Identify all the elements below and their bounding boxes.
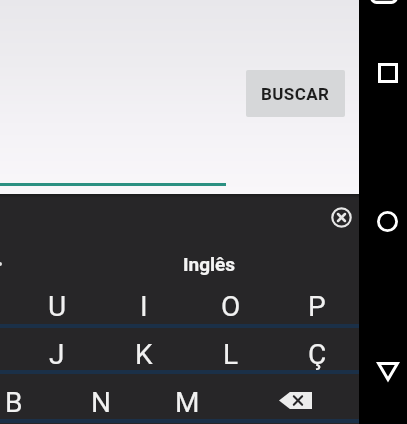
button[interactable]: Backspace — [273, 378, 317, 422]
staticText: K — [135, 338, 153, 371]
staticText: BUSCAR — [261, 84, 330, 104]
staticText: Ç — [308, 338, 327, 371]
button[interactable]: M — [144, 379, 230, 424]
staticText: N — [91, 386, 111, 419]
button[interactable]: L — [188, 331, 274, 378]
button[interactable]: BUSCAR — [246, 70, 345, 117]
button[interactable]: P — [274, 283, 360, 330]
button[interactable]: Inglês — [159, 249, 259, 279]
staticText: Inglês — [183, 253, 236, 275]
button[interactable]: J — [14, 331, 100, 378]
button[interactable]: U — [14, 283, 100, 330]
staticText: J — [49, 338, 65, 371]
button[interactable]: O — [188, 283, 274, 330]
button[interactable]: Recent apps — [378, 63, 398, 83]
button[interactable]: Hide keyboard — [370, 0, 398, 4]
staticText: I — [140, 290, 148, 323]
button[interactable]: N — [58, 379, 144, 424]
staticText: M — [175, 386, 200, 419]
button[interactable]: Home — [377, 211, 398, 232]
button[interactable]: B — [0, 379, 57, 424]
button[interactable]: Ç — [274, 331, 360, 378]
button[interactable]: K — [101, 331, 187, 378]
button[interactable]: I — [101, 283, 187, 330]
staticText: L — [223, 338, 239, 371]
button[interactable]: Close keyboard — [327, 203, 355, 231]
staticText: U — [48, 290, 67, 323]
staticText: P — [308, 290, 326, 323]
staticText: B — [5, 386, 23, 419]
button[interactable]: Back — [377, 361, 399, 382]
staticText: O — [221, 290, 241, 323]
